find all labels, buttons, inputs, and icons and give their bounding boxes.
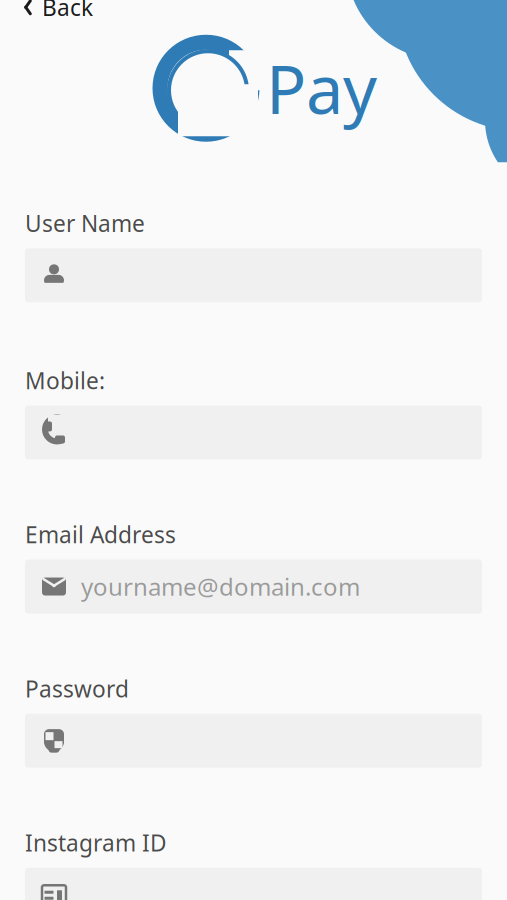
button[interactable]: User Name (25, 248, 482, 302)
staticText: Mobile: (25, 365, 105, 395)
staticText: User Name (25, 208, 145, 238)
staticText: Pay (266, 44, 377, 132)
button[interactable]: Password (25, 714, 482, 768)
button[interactable]: Back (18, 0, 97, 28)
button[interactable]: Instagram ID (25, 868, 482, 900)
button[interactable]: Mobile: (25, 405, 482, 459)
staticText: Email Address (25, 519, 176, 549)
button[interactable]: Email Address (25, 560, 482, 614)
staticText: yourname@domain.com (81, 571, 360, 602)
staticText: Back (42, 0, 93, 22)
staticText: Password (25, 674, 129, 704)
staticText: Instagram ID (25, 828, 167, 858)
